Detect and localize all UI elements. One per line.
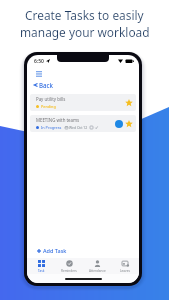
button[interactable]: Menu xyxy=(36,71,42,76)
staticText: manage your workload xyxy=(20,24,150,40)
staticText: Wed Oct 12 xyxy=(69,125,88,130)
staticText: Back xyxy=(39,81,54,89)
staticText: Add Task xyxy=(43,247,67,254)
staticText: MEETING with teams xyxy=(36,117,80,123)
button[interactable]: MEETING with teams xyxy=(30,115,136,132)
button[interactable]: Reminders xyxy=(55,258,83,274)
staticText: Attendance xyxy=(89,269,106,273)
button[interactable]: Add Task xyxy=(37,247,67,254)
staticText: Pay utility bills xyxy=(36,96,66,102)
staticText: Leaves xyxy=(120,269,130,273)
button[interactable]: Back xyxy=(33,81,54,89)
staticText: Reminders xyxy=(61,269,77,273)
staticText: Task xyxy=(38,269,45,273)
button[interactable]: Attendance xyxy=(83,258,111,274)
button[interactable]: Task xyxy=(27,258,55,274)
button[interactable]: Leaves xyxy=(111,258,139,274)
button[interactable]: Pay utility bills xyxy=(30,94,136,111)
staticText: Create Tasks to easily xyxy=(25,7,144,23)
staticText: Pending xyxy=(41,104,56,109)
staticText: 6:50 xyxy=(34,58,44,65)
staticText: In Progress xyxy=(41,125,62,130)
